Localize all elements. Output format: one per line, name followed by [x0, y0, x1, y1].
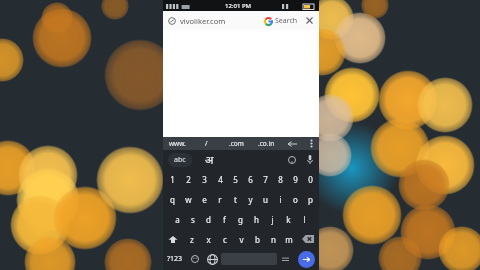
button[interactable]: 1 — [164, 169, 180, 189]
staticText: h — [254, 214, 259, 225]
button[interactable]: f — [216, 209, 232, 229]
button[interactable]: अ — [197, 150, 283, 169]
staticText: www. — [169, 139, 186, 148]
button[interactable]: 7 — [258, 169, 273, 189]
staticText: अ — [205, 152, 214, 167]
staticText: t — [234, 194, 237, 205]
button[interactable]: Emoji — [187, 249, 203, 269]
button[interactable]: Help — [283, 150, 301, 169]
button[interactable]: u — [258, 189, 273, 209]
staticText: .com — [229, 139, 244, 148]
button[interactable]: i — [273, 189, 288, 209]
staticText: vivoliker.com — [180, 16, 226, 26]
button[interactable]: a — [170, 209, 185, 229]
button[interactable]: 2 — [180, 169, 196, 189]
button[interactable]: Backspace — [297, 229, 319, 249]
button[interactable]: Site info — [168, 17, 176, 25]
button[interactable]: Search — [264, 16, 298, 26]
staticText: b — [255, 234, 260, 245]
button[interactable]: 4 — [212, 169, 228, 189]
button[interactable]: Go — [298, 251, 315, 268]
button[interactable]: t — [228, 189, 243, 209]
staticText: e — [202, 194, 207, 205]
button[interactable]: / — [192, 137, 221, 150]
button[interactable]: ?123 — [163, 249, 187, 269]
button[interactable]: w — [180, 189, 196, 209]
button[interactable]: www. — [163, 137, 192, 150]
staticText: Search — [275, 16, 298, 26]
staticText: j — [271, 214, 274, 225]
button[interactable]: n — [265, 229, 281, 249]
button[interactable]: 6 — [243, 169, 258, 189]
button[interactable]: g — [232, 209, 248, 229]
staticText: 2 — [186, 174, 191, 185]
staticText: 4 — [218, 174, 223, 185]
button[interactable]: Close — [305, 16, 314, 25]
button[interactable]: More options — [303, 137, 319, 150]
staticText: a — [175, 214, 180, 225]
button[interactable]: r — [212, 189, 228, 209]
button[interactable]: s — [185, 209, 200, 229]
button[interactable]: v — [233, 229, 249, 249]
staticText: p — [308, 194, 313, 205]
staticText: u — [263, 194, 268, 205]
button[interactable]: y — [243, 189, 258, 209]
staticText: i — [279, 194, 282, 205]
staticText: v — [239, 234, 244, 245]
button[interactable]: .com — [221, 137, 251, 150]
button[interactable]: d — [200, 209, 216, 229]
button[interactable]: h — [248, 209, 264, 229]
button[interactable]: e — [196, 189, 212, 209]
button[interactable]: b — [249, 229, 265, 249]
staticText: c — [223, 234, 227, 245]
button[interactable]: 9 — [288, 169, 303, 189]
staticText: ?123 — [167, 254, 183, 264]
button[interactable]: x — [200, 229, 217, 249]
staticText: / — [205, 139, 208, 148]
staticText: 0 — [308, 174, 313, 185]
button[interactable]: k — [280, 209, 296, 229]
staticText: m — [285, 234, 293, 245]
button[interactable]: c — [217, 229, 233, 249]
staticText: o — [293, 194, 298, 205]
staticText: 5 — [233, 174, 238, 185]
staticText: 9 — [293, 174, 298, 185]
staticText: 6 — [248, 174, 253, 185]
staticText: 8 — [278, 174, 283, 185]
button[interactable]: 0 — [303, 169, 318, 189]
button[interactable]: Voice input — [301, 150, 319, 169]
button[interactable]: Shift — [163, 229, 183, 249]
button[interactable]: .co.in — [251, 137, 281, 150]
staticText: z — [190, 234, 194, 245]
staticText: n — [271, 234, 276, 245]
button[interactable]: Change language — [203, 249, 221, 269]
button[interactable]: 3 — [196, 169, 212, 189]
staticText: r — [218, 194, 222, 205]
staticText: s — [191, 214, 195, 225]
staticText: d — [206, 214, 211, 225]
button[interactable]: l — [296, 209, 312, 229]
button[interactable]: Previous — [281, 137, 303, 150]
staticText: l — [303, 214, 306, 225]
staticText: q — [170, 194, 175, 205]
button[interactable]: q — [164, 189, 180, 209]
button[interactable]: abc — [163, 150, 197, 169]
button[interactable]: z — [183, 229, 200, 249]
staticText: g — [238, 214, 243, 225]
button[interactable]: m — [281, 229, 297, 249]
staticText: abc — [174, 155, 186, 165]
staticText: 7 — [263, 174, 268, 185]
staticText: x — [206, 234, 211, 245]
staticText: y — [248, 194, 253, 205]
button[interactable]: 8 — [273, 169, 288, 189]
staticText: 3 — [202, 174, 207, 185]
button[interactable]: Settings — [277, 249, 293, 269]
staticText: k — [286, 214, 291, 225]
button[interactable]: p — [303, 189, 318, 209]
button[interactable]: o — [288, 189, 303, 209]
button[interactable]: j — [264, 209, 280, 229]
staticText: f — [223, 214, 226, 225]
button[interactable]: 5 — [228, 169, 243, 189]
staticText: 1 — [170, 174, 175, 185]
